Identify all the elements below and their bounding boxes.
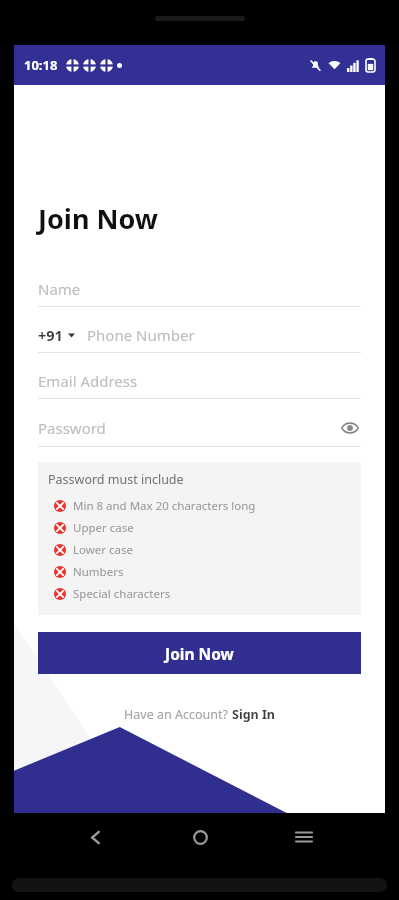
staticText: Have an Account? (124, 706, 232, 723)
staticText: Password must include (48, 471, 184, 488)
button[interactable]: Join Now (38, 632, 361, 674)
button[interactable]: Home (177, 814, 223, 860)
button[interactable]: Back (72, 814, 118, 860)
staticText: Special characters (73, 586, 171, 602)
button[interactable]: Email Address (38, 371, 361, 398)
button[interactable]: Password (38, 417, 361, 446)
staticText: Name (38, 279, 81, 299)
staticText: Numbers (73, 564, 124, 580)
staticText: Lower case (73, 542, 133, 558)
button[interactable]: Name (38, 279, 361, 306)
staticText: 10:18 (24, 56, 58, 74)
button[interactable]: Sign In (232, 706, 275, 723)
staticText: Upper case (73, 520, 134, 536)
button[interactable]: Recent apps (281, 814, 327, 860)
staticText: Password (38, 418, 106, 438)
staticText: Sign In (232, 706, 275, 723)
staticText: Email Address (38, 371, 138, 391)
staticText: Join Now (165, 643, 234, 664)
button[interactable]: Show password (339, 417, 361, 439)
staticText: Min 8 and Max 20 characters long (73, 498, 256, 514)
staticText: Join Now (38, 200, 158, 237)
staticText: Phone Number (87, 325, 195, 345)
button[interactable]: +91 (38, 325, 361, 352)
staticText: +91 (38, 325, 63, 345)
